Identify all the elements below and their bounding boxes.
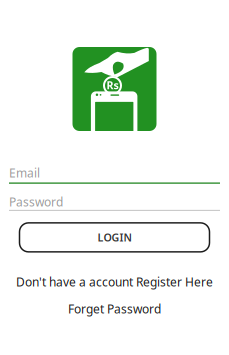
staticText: Email bbox=[9, 165, 40, 181]
button[interactable]: Forget Password bbox=[68, 301, 161, 317]
staticText: Forget Password bbox=[68, 301, 161, 317]
button[interactable]: Don't have a account Register Here bbox=[16, 274, 213, 290]
staticText: Rs bbox=[106, 78, 118, 92]
staticText: Password bbox=[9, 194, 63, 210]
button[interactable]: LOGIN bbox=[19, 223, 209, 252]
staticText: LOGIN bbox=[97, 230, 131, 244]
staticText: Don't have a account Register Here bbox=[16, 274, 213, 290]
